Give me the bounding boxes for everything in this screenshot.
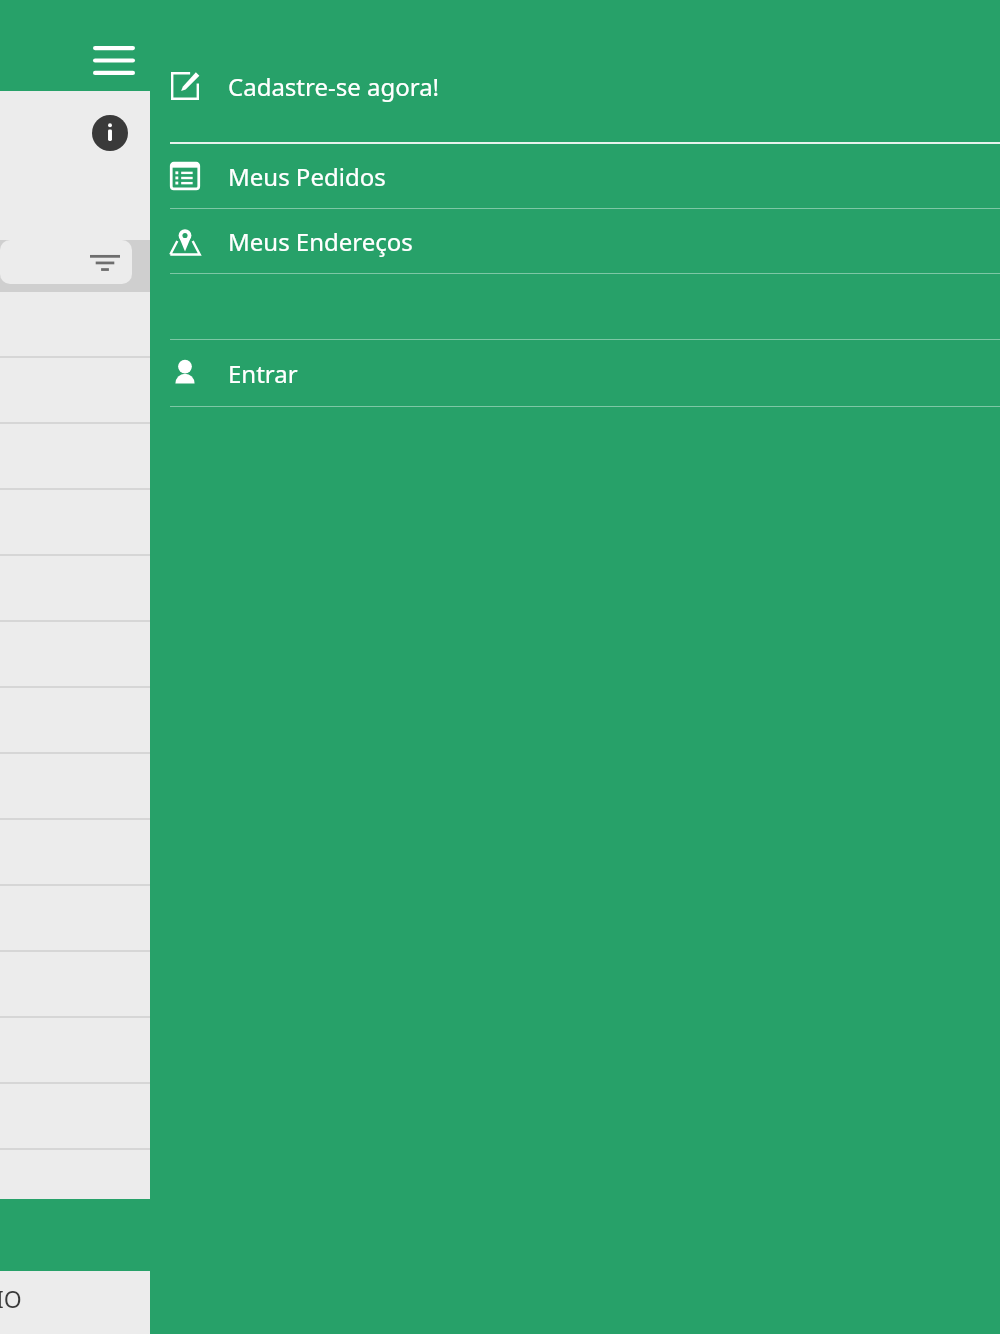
staticText: IO (0, 1283, 22, 1314)
button[interactable]: IO (0, 1271, 150, 1334)
staticText: Entrar (228, 357, 298, 390)
button[interactable]: Entrar (150, 340, 1000, 406)
button[interactable]: Open navigation menu (86, 36, 142, 84)
button[interactable]: Information (92, 115, 128, 151)
button[interactable]: Filter (0, 240, 132, 284)
button[interactable]: Cadastre-se agora! (150, 30, 1000, 142)
button[interactable]: Meus Pedidos (150, 144, 1000, 208)
button[interactable]: Meus Endereços (150, 209, 1000, 273)
staticText: Meus Pedidos (228, 160, 386, 193)
staticText: Meus Endereços (228, 225, 413, 258)
staticText: Cadastre-se agora! (228, 70, 440, 103)
